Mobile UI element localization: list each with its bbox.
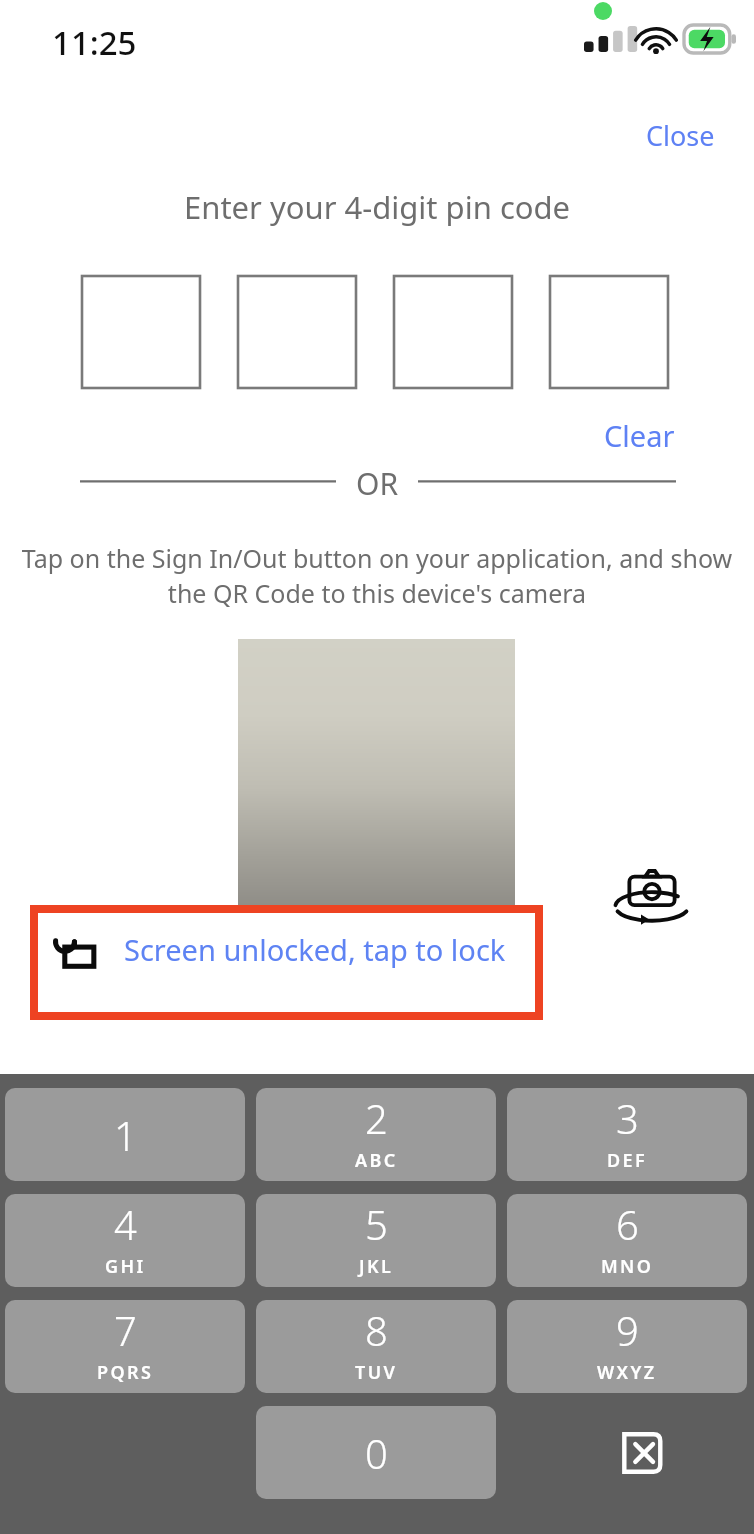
staticText: 11:25 — [52, 20, 137, 65]
staticText: 3 — [616, 1091, 639, 1145]
staticText: Clear — [604, 416, 675, 455]
button[interactable]: Switch camera — [608, 862, 696, 936]
staticText: 9 — [616, 1303, 639, 1357]
staticText: 0 — [365, 1426, 388, 1480]
staticText: OR — [356, 463, 399, 504]
button[interactable]: Close — [640, 113, 721, 158]
button[interactable] — [550, 276, 668, 388]
button[interactable] — [394, 276, 512, 388]
staticText: ABC — [355, 1148, 398, 1173]
button[interactable]: 1 — [5, 1088, 245, 1181]
button[interactable] — [238, 276, 356, 388]
staticText: Screen unlocked, tap to lock — [124, 930, 506, 969]
button[interactable]: 6 — [507, 1194, 747, 1287]
staticText: GHI — [105, 1254, 146, 1279]
button[interactable]: 5 — [256, 1194, 496, 1287]
staticText: 7 — [114, 1303, 137, 1357]
staticText: DEF — [607, 1148, 648, 1173]
button[interactable]: Backspace — [570, 1406, 695, 1499]
staticText: 6 — [616, 1197, 639, 1251]
button[interactable]: 8 — [256, 1300, 496, 1393]
button[interactable]: Clear — [598, 412, 681, 459]
button[interactable]: 3 — [507, 1088, 747, 1181]
button[interactable]: 7 — [5, 1300, 245, 1393]
staticText: Close — [646, 117, 715, 154]
staticText: MNO — [601, 1254, 654, 1279]
staticText: 5 — [365, 1197, 388, 1251]
staticText: 8 — [365, 1303, 388, 1357]
button[interactable]: Screen unlocked, tap to lock — [38, 913, 535, 1012]
staticText: TUV — [355, 1360, 398, 1385]
staticText: PQRS — [97, 1360, 154, 1385]
button[interactable] — [82, 276, 200, 388]
staticText: WXYZ — [597, 1360, 657, 1385]
button[interactable]: 0 — [256, 1406, 496, 1499]
button[interactable]: 9 — [507, 1300, 747, 1393]
staticText: 2 — [365, 1091, 388, 1145]
button[interactable]: 2 — [256, 1088, 496, 1181]
staticText: Enter your 4-digit pin code — [184, 186, 571, 228]
staticText: 1 — [114, 1108, 137, 1162]
staticText: JKL — [359, 1254, 394, 1279]
button[interactable]: 4 — [5, 1194, 245, 1287]
staticText: 4 — [114, 1197, 137, 1251]
staticText: Tap on the Sign In/Out button on your ap… — [18, 541, 736, 611]
